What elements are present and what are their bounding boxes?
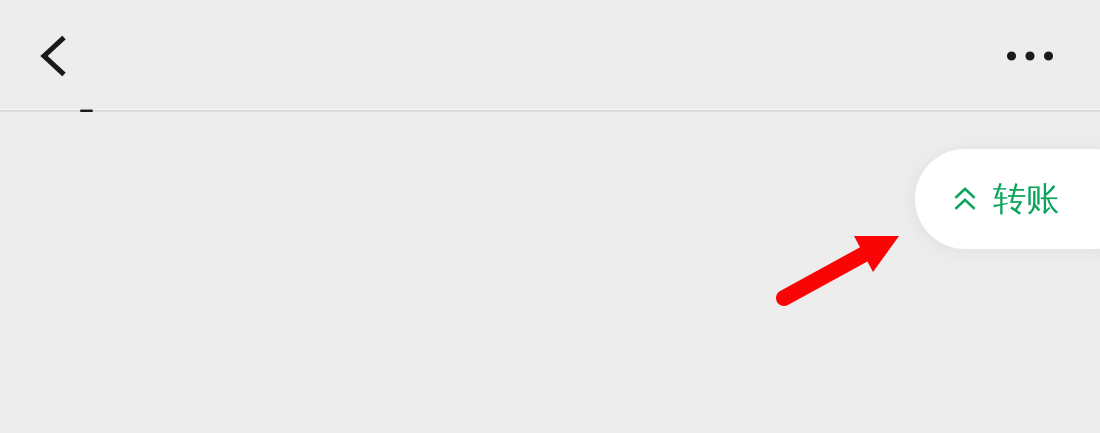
button[interactable]: 转账 [915,149,1100,249]
staticText: 转账 [993,178,1059,219]
button[interactable]: More [992,25,1068,87]
button[interactable]: Back [16,17,92,95]
